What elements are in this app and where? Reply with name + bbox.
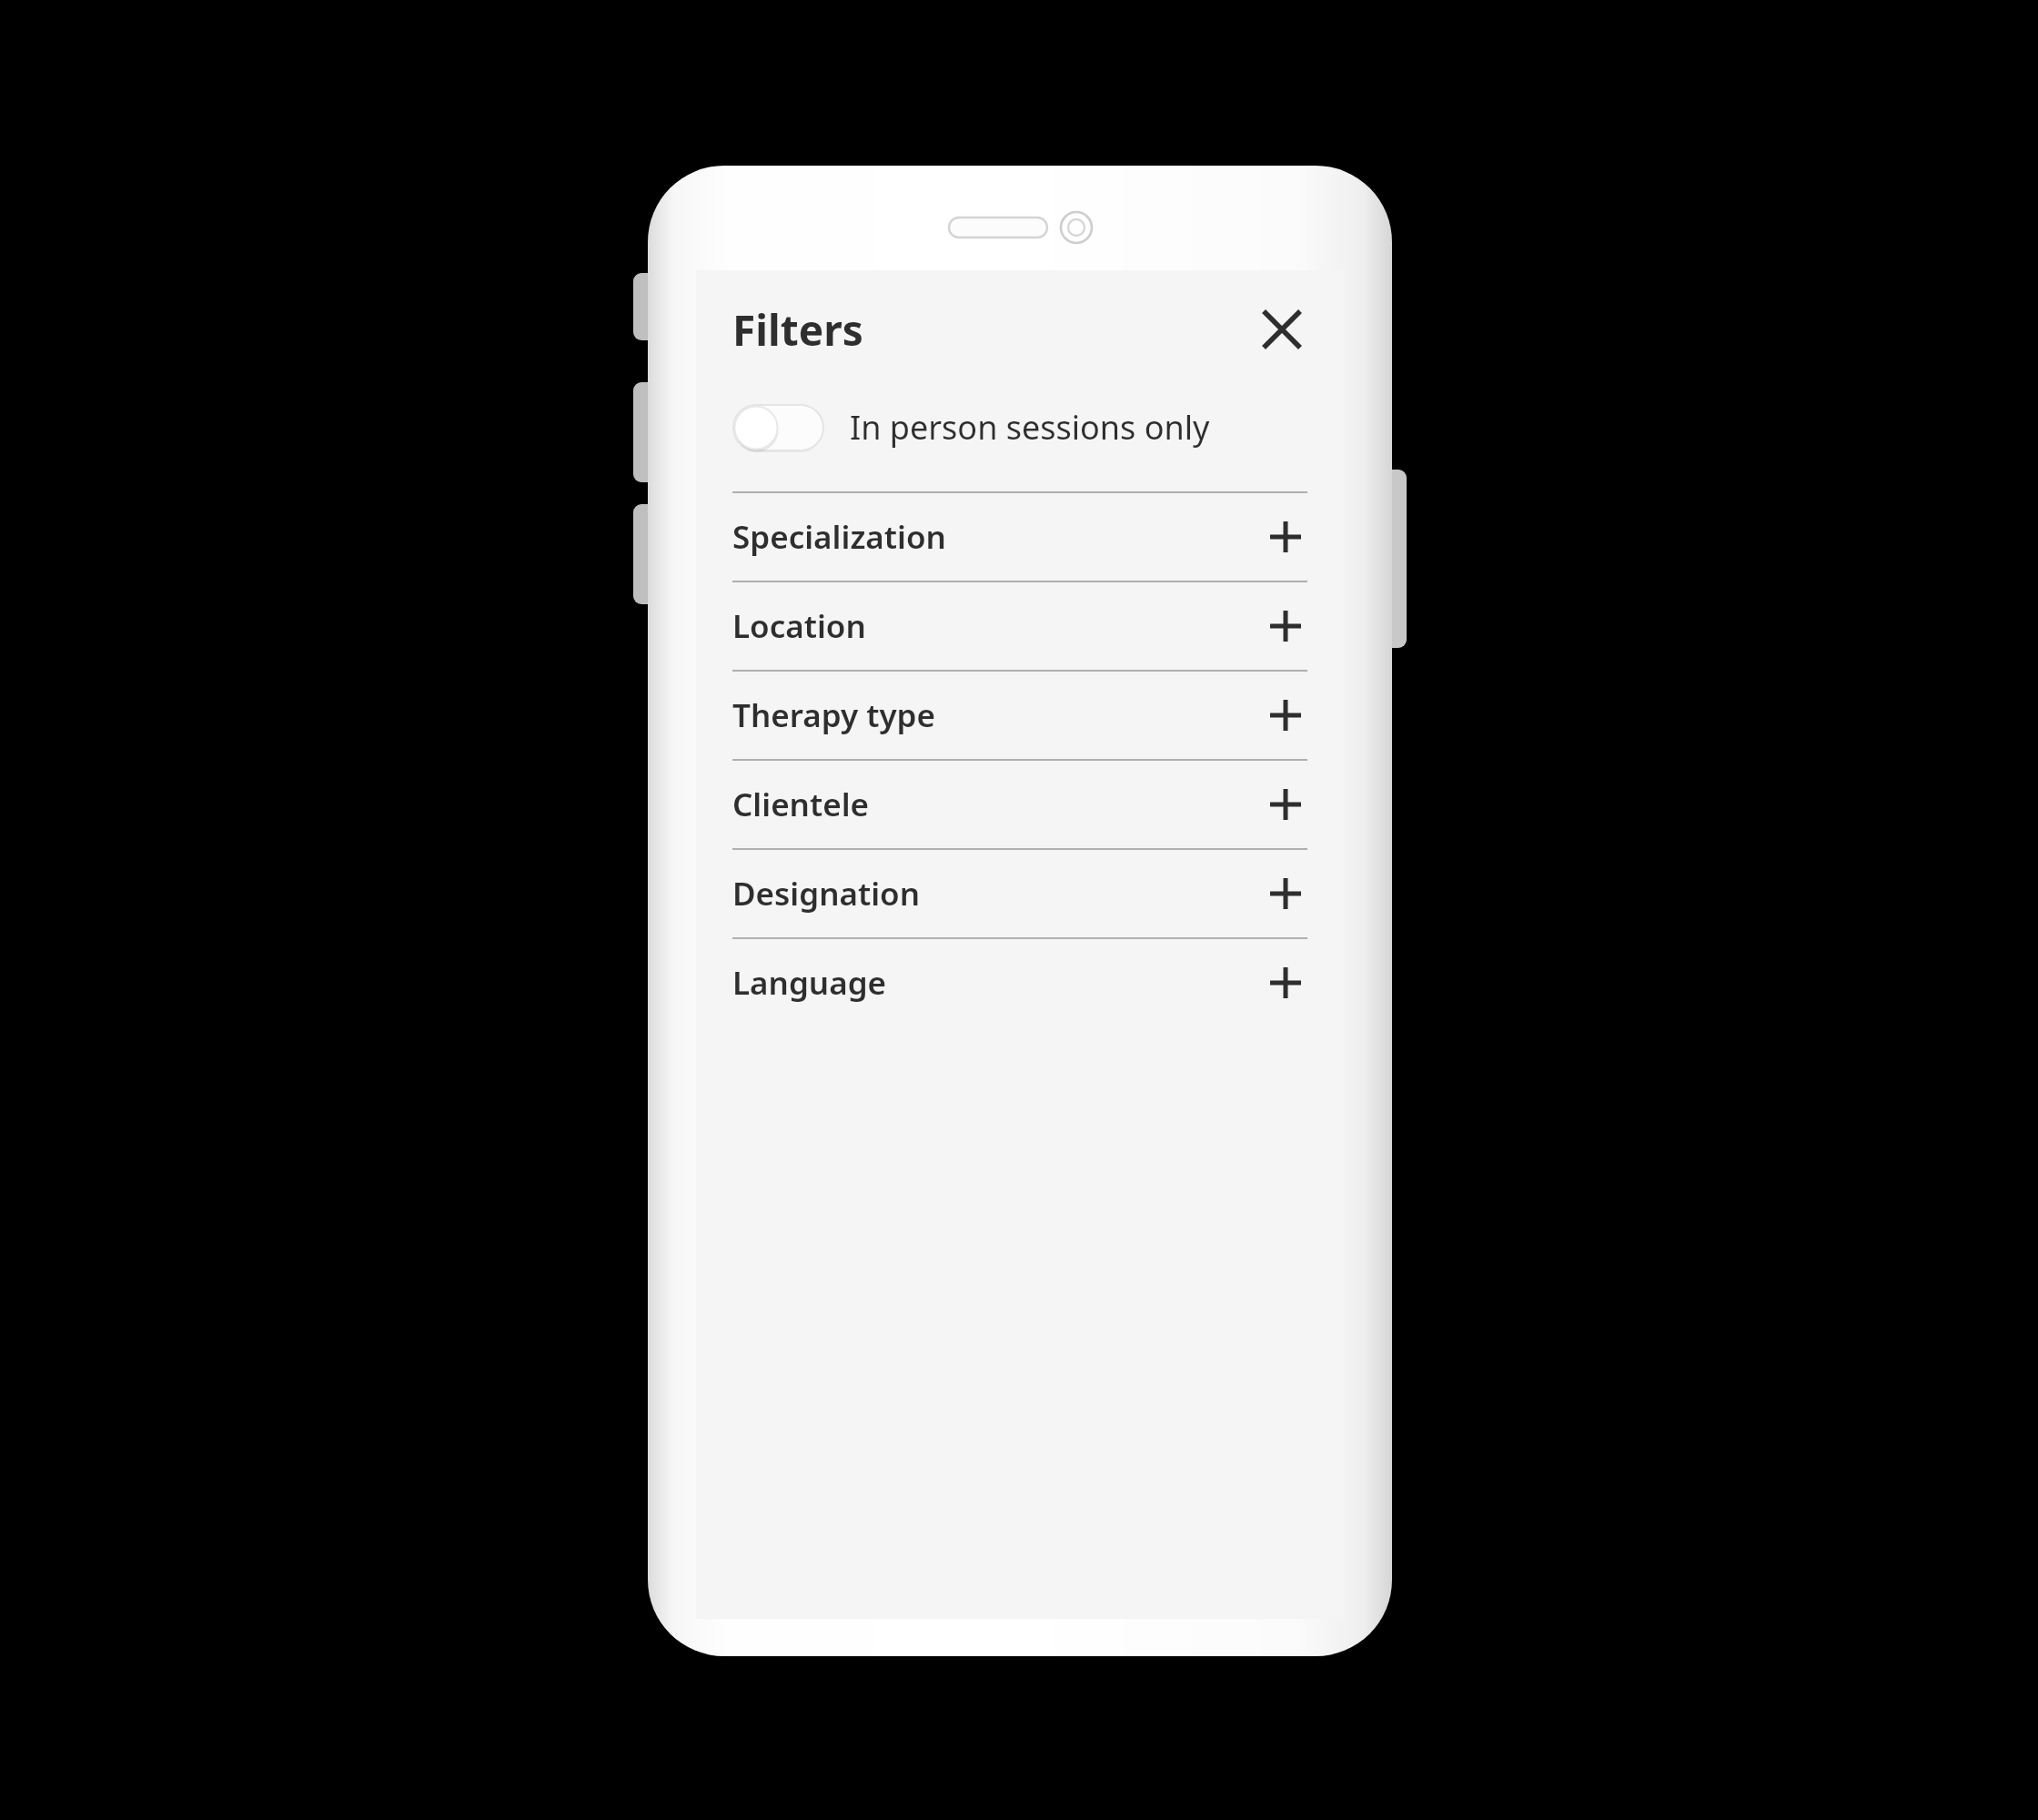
staticText: Clientele bbox=[732, 783, 1264, 826]
staticText: Location bbox=[732, 604, 1264, 648]
staticText: In person sessions only bbox=[850, 405, 1210, 450]
staticText: Specialization bbox=[732, 515, 1264, 559]
button[interactable]: Therapy type bbox=[696, 672, 1344, 759]
button[interactable]: Clientele bbox=[696, 761, 1344, 848]
button[interactable]: Language bbox=[696, 939, 1344, 1026]
staticText: Therapy type bbox=[732, 693, 1264, 737]
staticText: Filters bbox=[732, 301, 863, 359]
button[interactable]: Close filters bbox=[1253, 300, 1311, 359]
button[interactable]: In person sessions only toggle bbox=[732, 404, 824, 451]
button[interactable]: Location bbox=[696, 582, 1344, 670]
staticText: Language bbox=[732, 961, 1264, 1005]
button[interactable]: Designation bbox=[696, 850, 1344, 937]
button[interactable]: Specialization bbox=[696, 493, 1344, 581]
staticText: Designation bbox=[732, 872, 1264, 915]
